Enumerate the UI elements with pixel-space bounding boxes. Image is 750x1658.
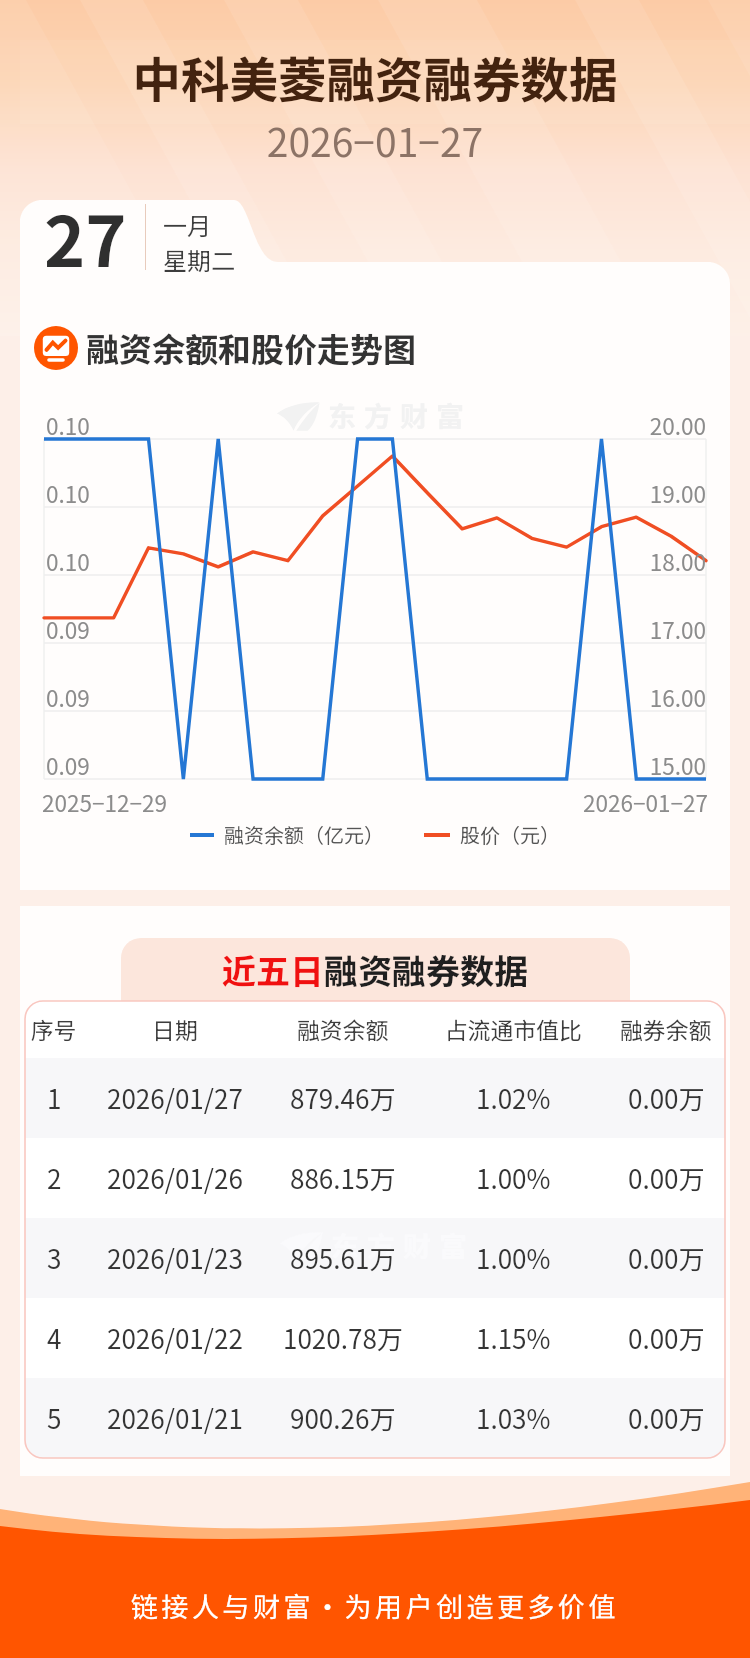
button[interactable]: 2 <box>25 1138 725 1218</box>
staticText: 19.00 <box>0 477 706 510</box>
staticText: 0.10 <box>46 545 90 578</box>
staticText: 2026−01−27 <box>0 112 750 168</box>
other: 走势图 <box>34 326 78 370</box>
staticText: 2026/01/27 <box>107 1079 243 1117</box>
button[interactable]: 3 <box>25 1218 725 1298</box>
staticText: 0.09 <box>46 613 90 646</box>
staticText: 0.00万 <box>628 1079 705 1117</box>
staticText: 中科美菱融资融券数据 <box>0 42 750 112</box>
staticText: 2026/01/26 <box>107 1159 243 1197</box>
staticText: 16.00 <box>0 681 706 714</box>
staticText: 0.10 <box>46 409 90 442</box>
staticText: 900.26万 <box>290 1399 396 1437</box>
staticText: 一月 <box>163 207 211 242</box>
staticText: 1.00% <box>476 1239 551 1277</box>
staticText: 4 <box>47 1319 62 1357</box>
staticText: 5 <box>47 1399 62 1437</box>
staticText: 2026/01/22 <box>107 1319 243 1357</box>
staticText: 886.15万 <box>290 1159 396 1197</box>
staticText: 15.00 <box>0 749 706 782</box>
staticText: 0.00万 <box>628 1239 705 1277</box>
staticText: 0.00万 <box>628 1319 705 1357</box>
staticText: 18.00 <box>0 545 706 578</box>
staticText: 股价（元） <box>460 820 560 849</box>
button[interactable]: 5 <box>25 1378 725 1458</box>
staticText: 1 <box>47 1079 62 1117</box>
staticText: 0.00万 <box>628 1159 705 1197</box>
staticText: 东方财富 <box>331 1225 476 1266</box>
staticText: 2025−12−29 <box>42 786 167 819</box>
staticText: 融资余额和股价走势图 <box>86 324 416 372</box>
staticText: 东方财富 <box>328 395 473 436</box>
staticText: 0.10 <box>46 477 90 510</box>
staticText: 0.00万 <box>628 1399 705 1437</box>
staticText: 20.00 <box>0 409 706 442</box>
staticText: 0.09 <box>46 749 90 782</box>
staticText: 3 <box>47 1239 62 1277</box>
staticText: 融资余额 <box>297 1013 389 1046</box>
staticText: 序号 <box>31 1013 77 1046</box>
staticText: 879.46万 <box>290 1079 396 1117</box>
staticText: 日期 <box>152 1013 198 1046</box>
staticText: 0.09 <box>46 681 90 714</box>
staticText: 占流通市值比 <box>445 1013 582 1046</box>
staticText: 17.00 <box>0 613 706 646</box>
staticText: 895.61万 <box>290 1239 396 1277</box>
staticText: 2026/01/21 <box>107 1399 243 1437</box>
staticText: 2026/01/23 <box>107 1239 243 1277</box>
button[interactable]: 链接人与财富·为用户创造更多价值 <box>131 1586 619 1625</box>
button[interactable]: 1 <box>25 1058 725 1138</box>
staticText: 融券余额 <box>620 1013 712 1046</box>
staticText: 27 <box>44 186 127 287</box>
staticText: 1.02% <box>476 1079 551 1117</box>
staticText: 1.03% <box>476 1399 551 1437</box>
staticText: 融资融券数据 <box>324 945 528 994</box>
staticText: 2026−01−27 <box>0 786 708 819</box>
staticText: 1020.78万 <box>283 1319 403 1357</box>
staticText: 近五日 <box>222 945 324 994</box>
staticText: 融资余额（亿元） <box>224 820 384 849</box>
button[interactable]: 4 <box>25 1298 725 1378</box>
staticText: 1.15% <box>476 1319 551 1357</box>
staticText: 1.00% <box>476 1159 551 1197</box>
staticText: 2 <box>47 1159 62 1197</box>
staticText: 星期二 <box>163 242 235 277</box>
